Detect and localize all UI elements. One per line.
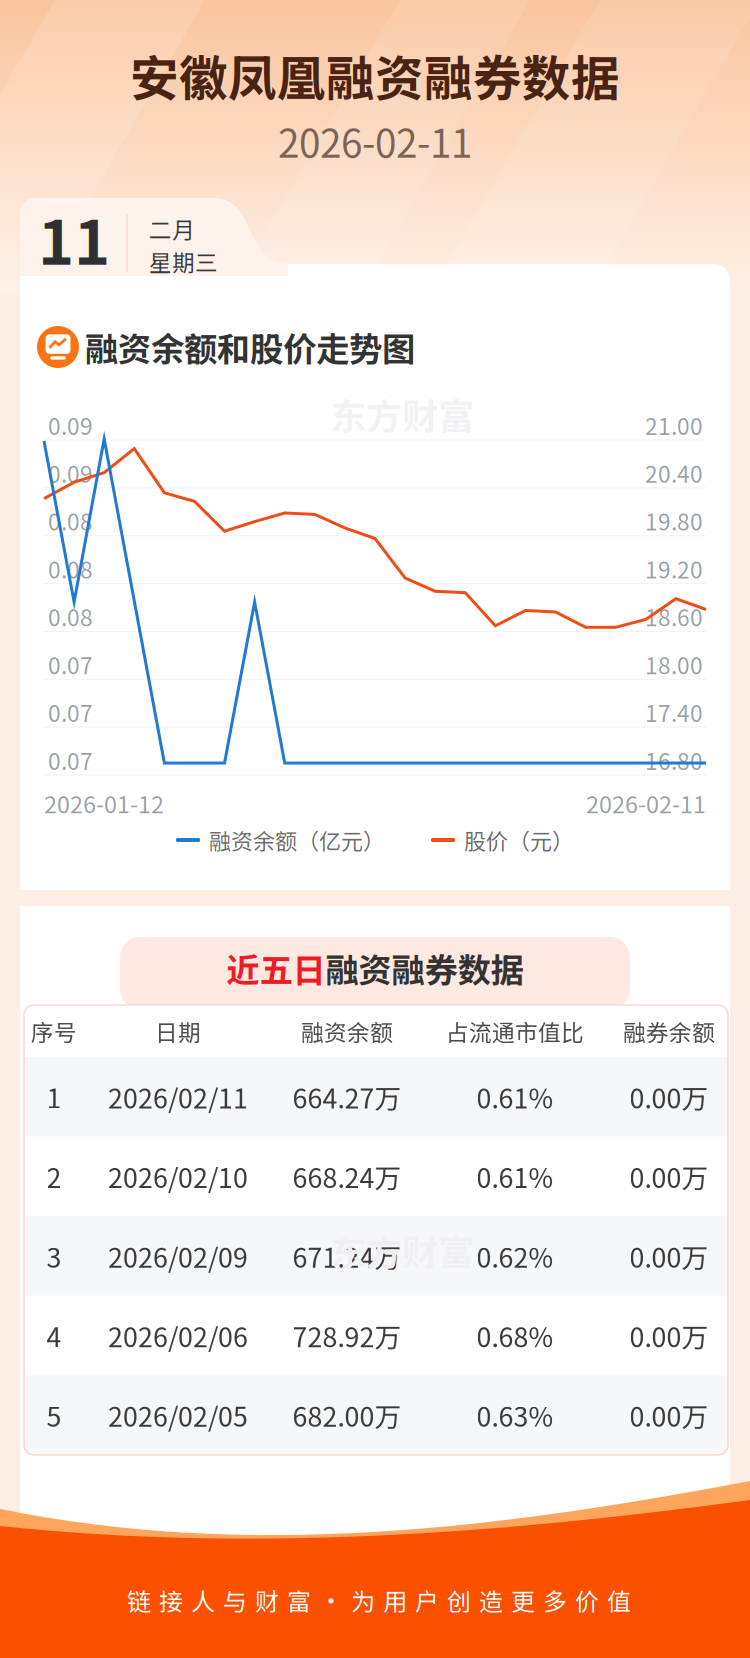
- staticText: 0.68%: [476, 1316, 553, 1355]
- staticText: 668.24万: [292, 1157, 401, 1196]
- staticText: 728.92万: [292, 1316, 401, 1355]
- staticText: 19.20: [645, 552, 703, 585]
- staticText: 0.00万: [629, 1316, 708, 1355]
- staticText: 2: [46, 1157, 61, 1196]
- staticText: 682.00万: [292, 1396, 401, 1434]
- staticText: 3: [46, 1237, 61, 1275]
- staticText: 0.07: [48, 696, 93, 728]
- staticText: 18.60: [645, 600, 703, 633]
- staticText: 0.61%: [476, 1157, 553, 1196]
- staticText: 18.00: [645, 648, 703, 681]
- staticText: 融券余额: [623, 1015, 715, 1047]
- staticText: 序号: [31, 1015, 77, 1047]
- staticText: 占流通市值比: [446, 1015, 584, 1047]
- staticText: 0.08: [48, 552, 93, 585]
- staticText: 20.40: [645, 456, 703, 489]
- staticText: 二月: [149, 212, 195, 245]
- staticText: 融资余额和股价走势图: [85, 323, 415, 371]
- staticText: 0.07: [48, 744, 93, 776]
- staticText: 0.00万: [629, 1396, 708, 1434]
- staticText: 2026/02/06: [108, 1316, 248, 1355]
- staticText: 11: [38, 194, 110, 282]
- staticText: 17.40: [645, 696, 703, 728]
- staticText: 2026-02-11: [586, 786, 706, 820]
- staticText: 星期三: [149, 245, 218, 278]
- staticText: 16.80: [645, 744, 703, 776]
- staticText: 东方财富: [330, 1224, 474, 1276]
- staticText: 0.08: [48, 504, 93, 537]
- staticText: 2026/02/11: [108, 1077, 248, 1116]
- staticText: 0.00万: [629, 1077, 708, 1116]
- staticText: 5: [46, 1396, 61, 1434]
- staticText: 0.00万: [629, 1157, 708, 1196]
- staticText: 4: [46, 1316, 61, 1355]
- staticText: 0.08: [48, 600, 93, 633]
- staticText: 2026-01-12: [44, 786, 164, 820]
- staticText: 链接人与财富·为用户创造更多价值: [127, 1583, 631, 1617]
- staticText: 21.00: [645, 409, 703, 441]
- staticText: 0.09: [48, 409, 93, 441]
- staticText: 1: [46, 1077, 61, 1116]
- staticText: 0.61%: [476, 1077, 553, 1116]
- staticText: 近五日: [226, 944, 325, 992]
- staticText: 2026-02-11: [278, 113, 472, 169]
- staticText: 融资融券数据: [325, 944, 523, 992]
- staticText: 0.00万: [629, 1237, 708, 1275]
- staticText: 日期: [155, 1015, 201, 1047]
- staticText: 安徽凤凰融资融券数据: [130, 40, 620, 110]
- staticText: 东方财富: [330, 388, 474, 440]
- staticText: 股价（元）: [464, 824, 574, 856]
- staticText: 671.24万: [292, 1237, 401, 1275]
- staticText: 2026/02/10: [108, 1157, 248, 1196]
- staticText: 2026/02/05: [108, 1396, 248, 1434]
- staticText: 0.62%: [476, 1237, 553, 1275]
- staticText: 融资余额（亿元）: [209, 824, 385, 856]
- staticText: 19.80: [645, 504, 703, 537]
- staticText: 2026/02/09: [108, 1237, 248, 1275]
- staticText: 0.63%: [476, 1396, 553, 1434]
- staticText: 664.27万: [292, 1077, 401, 1116]
- staticText: 0.07: [48, 648, 93, 681]
- staticText: 融资余额: [301, 1015, 393, 1047]
- staticText: 0.09: [48, 456, 93, 489]
